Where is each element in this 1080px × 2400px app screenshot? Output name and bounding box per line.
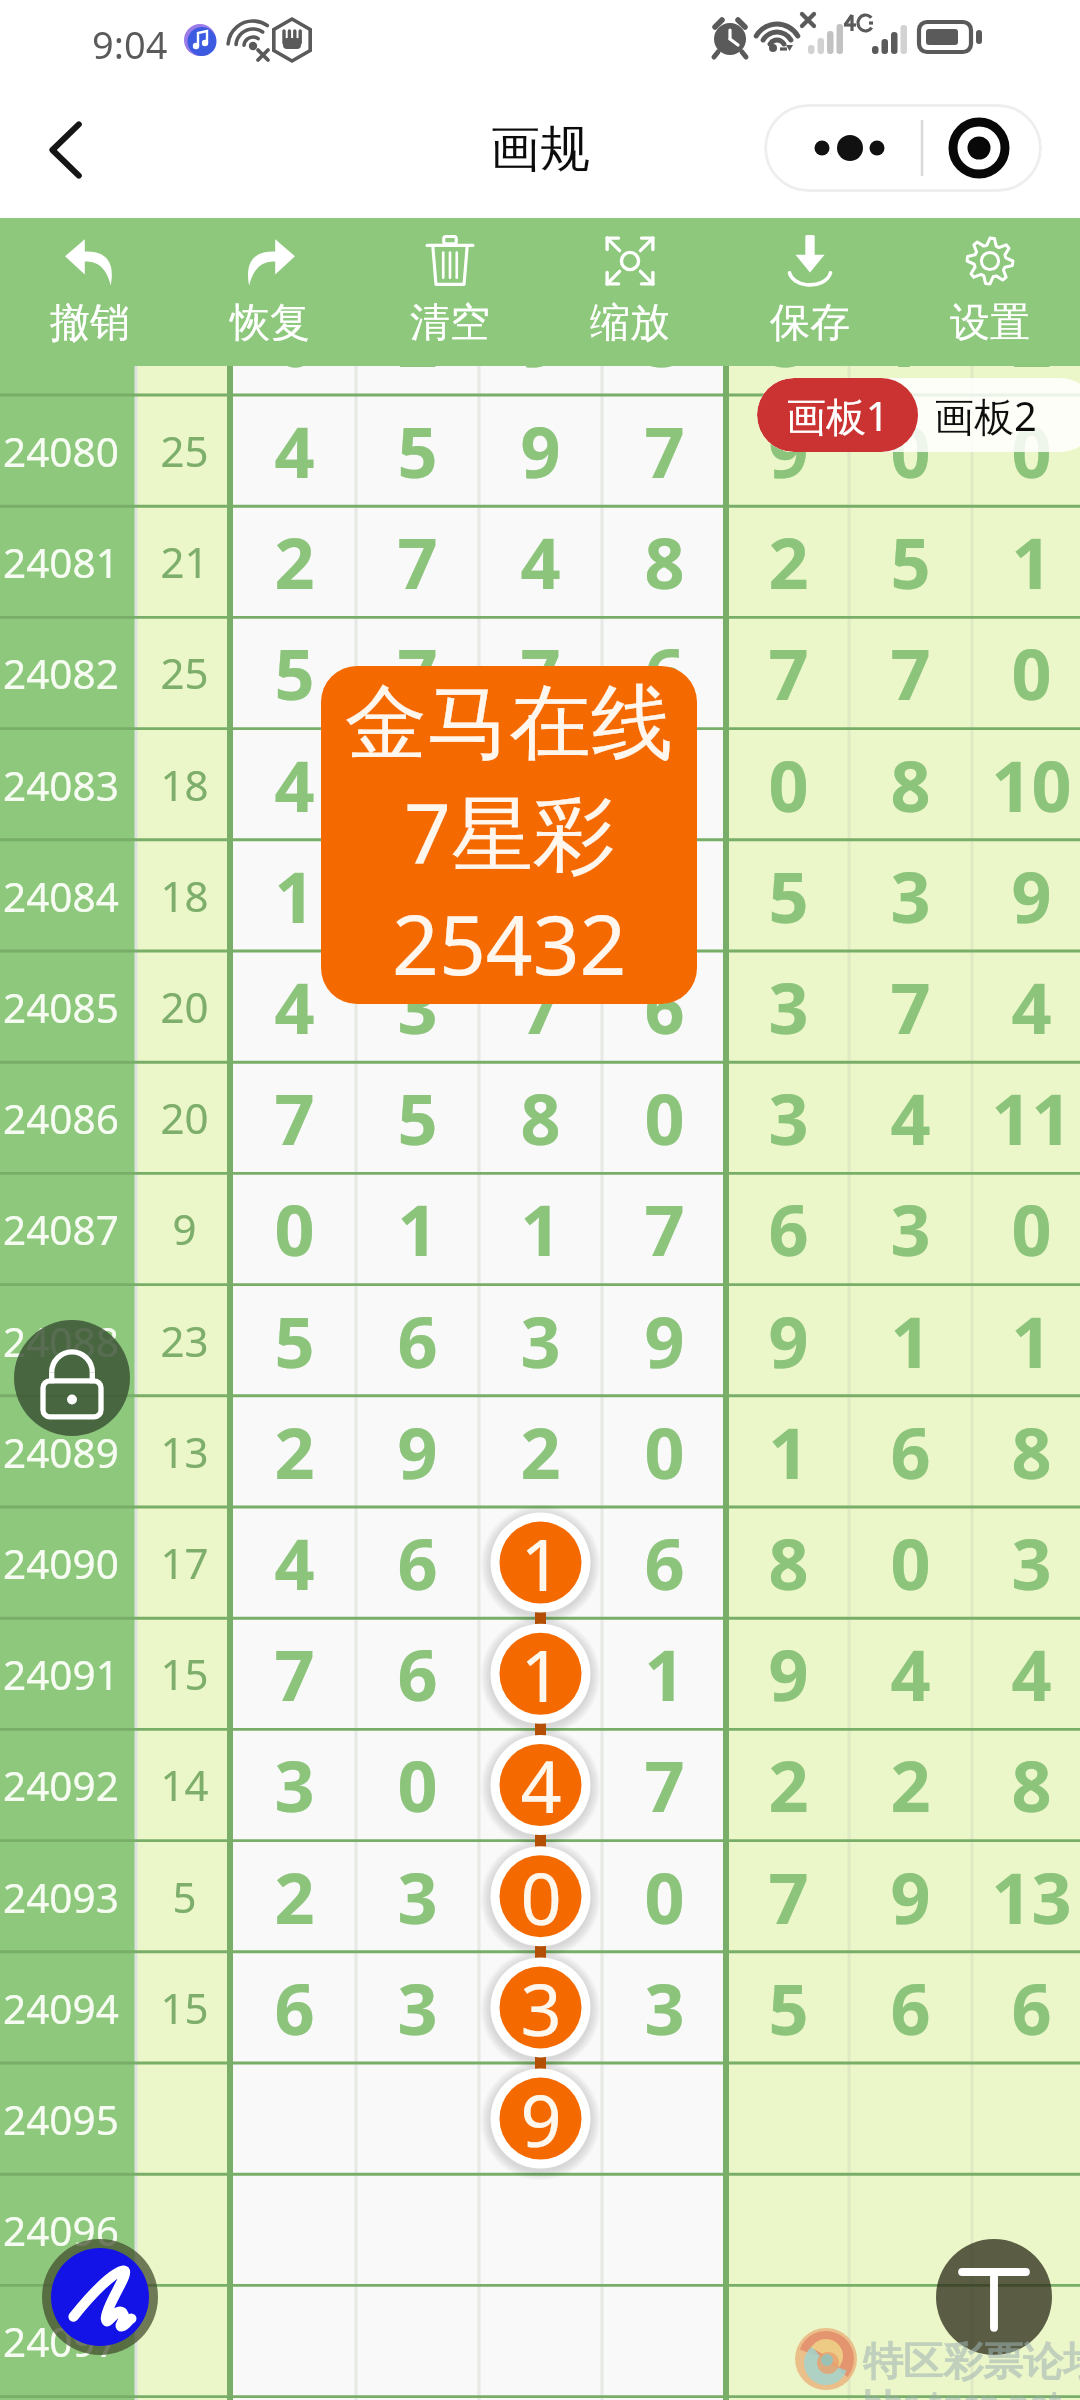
button[interactable]: 画板2 bbox=[918, 378, 1080, 452]
staticText: 5 bbox=[397, 1070, 438, 1165]
staticText: 9 bbox=[644, 1293, 685, 1388]
staticText: 24091 bbox=[3, 1647, 119, 1702]
staticText: 画规 bbox=[490, 118, 590, 181]
staticText: 25 bbox=[160, 422, 209, 479]
button[interactable]: 返回 bbox=[26, 110, 106, 190]
button[interactable]: 设置 bbox=[900, 218, 1080, 366]
staticText: 24080 bbox=[3, 424, 119, 479]
staticText: 4 bbox=[274, 737, 315, 832]
staticText: 1 bbox=[274, 848, 315, 943]
staticText: 3 bbox=[890, 1181, 931, 1276]
staticText: 7 bbox=[644, 1737, 685, 1832]
button[interactable]: 锁定 bbox=[14, 1320, 130, 1436]
staticText: 3 bbox=[520, 1959, 562, 2057]
staticText: 9 bbox=[397, 1404, 438, 1499]
staticText: 2 bbox=[1011, 292, 1052, 387]
staticText: 24094 bbox=[3, 1981, 119, 2036]
staticText: 18 bbox=[160, 756, 209, 813]
staticText: 24096 bbox=[3, 2203, 119, 2258]
staticText: 13 bbox=[160, 1423, 209, 1480]
button[interactable]: 画板1 bbox=[757, 378, 918, 452]
staticText: 5 bbox=[768, 292, 809, 387]
staticText: 24083 bbox=[3, 758, 119, 813]
staticText: 1 bbox=[890, 1293, 931, 1388]
staticText: 15 bbox=[160, 1645, 209, 1702]
staticText: 3 bbox=[890, 848, 931, 943]
staticText: 14 bbox=[160, 1756, 209, 1813]
staticText: 4 bbox=[520, 514, 561, 609]
staticText: 15 bbox=[160, 1979, 209, 2036]
staticText: 3 bbox=[397, 959, 438, 1054]
staticText: 21 bbox=[160, 533, 209, 590]
staticText: 5 bbox=[768, 848, 809, 943]
staticText: 7 bbox=[397, 625, 438, 720]
staticText: 13 bbox=[991, 1849, 1072, 1944]
staticText: 20 bbox=[160, 978, 209, 1035]
staticText: 0 bbox=[644, 1070, 685, 1165]
staticText: 2 bbox=[890, 1737, 931, 1832]
staticText: 2 bbox=[768, 514, 809, 609]
staticText: 17 bbox=[160, 1534, 209, 1591]
staticText: 10 bbox=[991, 737, 1072, 832]
staticText: 0 bbox=[1011, 1181, 1052, 1276]
staticText: 1 bbox=[1011, 514, 1052, 609]
button[interactable]: 文本 bbox=[936, 2239, 1052, 2355]
staticText: 24082 bbox=[3, 646, 119, 701]
staticText: 1 bbox=[644, 737, 685, 832]
staticText: 缩放 bbox=[590, 297, 670, 347]
staticText: 2 bbox=[520, 1404, 561, 1499]
staticText: 24084 bbox=[3, 869, 119, 924]
staticText: 0 bbox=[768, 737, 809, 832]
staticText: 7 bbox=[768, 1849, 809, 1944]
staticText: 3 bbox=[274, 1737, 315, 1832]
staticText: 6 bbox=[890, 1404, 931, 1499]
staticText: 6 bbox=[397, 1626, 438, 1721]
staticText: 0 bbox=[644, 1849, 685, 1944]
staticText: 设置 bbox=[950, 297, 1030, 347]
staticText: 24086 bbox=[3, 1091, 119, 1146]
staticText: 6 bbox=[274, 1960, 315, 2055]
staticText: 0 bbox=[890, 1515, 931, 1610]
staticText: 6 bbox=[644, 1515, 685, 1610]
staticText: 7 bbox=[644, 1181, 685, 1276]
staticText: 6 bbox=[768, 1181, 809, 1276]
staticText: 4 bbox=[520, 848, 561, 943]
button[interactable]: 更多菜单 bbox=[764, 104, 1042, 192]
button[interactable]: 保存 bbox=[720, 218, 900, 366]
staticText: 4 bbox=[274, 403, 315, 498]
button[interactable]: 清空 bbox=[360, 218, 540, 366]
staticText: 0 bbox=[890, 403, 931, 498]
staticText: 4 bbox=[890, 1626, 931, 1721]
staticText: 24097 bbox=[3, 2314, 119, 2369]
staticText: 3 bbox=[644, 1960, 685, 2055]
staticText: 25 bbox=[160, 644, 209, 701]
staticText: 5 bbox=[397, 403, 438, 498]
staticText: 9 bbox=[890, 1849, 931, 1944]
staticText: 3 bbox=[1011, 1515, 1052, 1610]
staticText: 24093 bbox=[3, 1870, 119, 1925]
button[interactable]: 缩放 bbox=[540, 218, 720, 366]
staticText: 4 bbox=[274, 1515, 315, 1610]
staticText: 24095 bbox=[3, 2092, 119, 2147]
staticText: 7 bbox=[520, 625, 561, 720]
staticText: 4 bbox=[520, 1736, 562, 1834]
staticText: 金马在线 bbox=[345, 672, 673, 775]
button[interactable]: 恢复 bbox=[180, 218, 360, 366]
staticText: 9 bbox=[520, 2070, 562, 2168]
staticText: 4 bbox=[274, 959, 315, 1054]
staticText: 3 bbox=[768, 1070, 809, 1165]
staticText: 2 bbox=[274, 514, 315, 609]
button[interactable]: 撤销 bbox=[0, 218, 180, 366]
staticText: 3 bbox=[768, 959, 809, 1054]
staticText: 3 bbox=[397, 1849, 438, 1944]
staticText: 5 bbox=[397, 737, 438, 832]
staticText: 5 bbox=[274, 1293, 315, 1388]
staticText: 3 bbox=[520, 1293, 561, 1388]
staticText: 20 bbox=[160, 1089, 209, 1146]
staticText: 6 bbox=[644, 959, 685, 1054]
staticText: 9 bbox=[768, 403, 809, 498]
button[interactable]: 画笔 bbox=[42, 2239, 158, 2355]
staticText: 恢复 bbox=[230, 297, 310, 347]
staticText: 1 bbox=[520, 1181, 561, 1276]
